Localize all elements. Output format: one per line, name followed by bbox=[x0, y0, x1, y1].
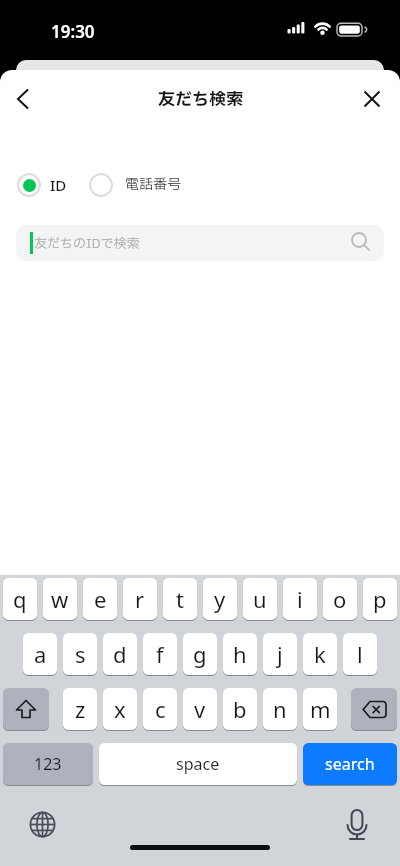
button[interactable]: e bbox=[83, 578, 117, 620]
staticText: 電話番号 bbox=[125, 174, 181, 195]
staticText: space bbox=[176, 753, 220, 775]
staticText: l bbox=[357, 639, 363, 669]
button[interactable]: z bbox=[63, 688, 97, 730]
button[interactable]: l bbox=[343, 633, 377, 675]
button[interactable]: h bbox=[223, 633, 257, 675]
staticText: r bbox=[135, 584, 145, 614]
button[interactable]: d bbox=[103, 633, 137, 675]
staticText: b bbox=[233, 694, 247, 724]
staticText: y bbox=[214, 584, 226, 614]
staticText: z bbox=[75, 694, 86, 724]
button[interactable] bbox=[351, 688, 397, 730]
staticText: e bbox=[94, 584, 107, 614]
button[interactable] bbox=[27, 809, 58, 840]
staticText: search bbox=[325, 753, 375, 775]
staticText: w bbox=[51, 584, 69, 614]
button[interactable] bbox=[0, 70, 48, 128]
staticText: x bbox=[114, 694, 126, 724]
staticText: 123 bbox=[34, 753, 62, 775]
staticText: q bbox=[13, 584, 27, 614]
staticText: k bbox=[314, 639, 326, 669]
staticText: j bbox=[277, 639, 283, 669]
button[interactable]: w bbox=[43, 578, 77, 620]
button[interactable]: o bbox=[323, 578, 357, 620]
staticText: d bbox=[113, 639, 127, 669]
button[interactable]: space bbox=[99, 743, 297, 785]
staticText: p bbox=[373, 584, 387, 614]
staticText: c bbox=[155, 694, 166, 724]
button[interactable]: q bbox=[3, 578, 37, 620]
button[interactable]: f bbox=[143, 633, 177, 675]
staticText: i bbox=[297, 584, 303, 614]
button[interactable] bbox=[341, 806, 372, 842]
button[interactable]: b bbox=[223, 688, 257, 730]
button[interactable]: g bbox=[183, 633, 217, 675]
staticText: 19:30 bbox=[51, 20, 95, 43]
button[interactable]: v bbox=[183, 688, 217, 730]
button[interactable]: 電話番号 bbox=[89, 172, 181, 197]
staticText: t bbox=[176, 584, 184, 614]
button[interactable] bbox=[3, 688, 49, 730]
button[interactable]: search bbox=[303, 743, 397, 785]
button[interactable]: u bbox=[243, 578, 277, 620]
button[interactable] bbox=[348, 70, 396, 128]
staticText: 友だちのIDで検索 bbox=[34, 234, 140, 253]
staticText: 友だち検索 bbox=[158, 87, 243, 112]
button[interactable]: i bbox=[283, 578, 317, 620]
button[interactable]: y bbox=[203, 578, 237, 620]
button[interactable]: j bbox=[263, 633, 297, 675]
staticText: u bbox=[253, 584, 267, 614]
staticText: s bbox=[75, 639, 86, 669]
staticText: o bbox=[333, 584, 347, 614]
button[interactable]: t bbox=[163, 578, 197, 620]
button[interactable]: a bbox=[23, 633, 57, 675]
button[interactable]: p bbox=[363, 578, 397, 620]
staticText: n bbox=[273, 694, 287, 724]
button[interactable]: m bbox=[303, 688, 337, 730]
button[interactable]: 123 bbox=[3, 743, 93, 785]
staticText: f bbox=[156, 639, 164, 669]
staticText: a bbox=[34, 639, 47, 669]
button[interactable]: ID bbox=[17, 172, 67, 197]
staticText: m bbox=[310, 694, 331, 724]
button[interactable]: k bbox=[303, 633, 337, 675]
button[interactable]: n bbox=[263, 688, 297, 730]
button[interactable]: r bbox=[123, 578, 157, 620]
staticText: ID bbox=[50, 175, 67, 195]
button[interactable]: c bbox=[143, 688, 177, 730]
button[interactable]: s bbox=[63, 633, 97, 675]
staticText: g bbox=[193, 639, 207, 669]
button[interactable]: 友だちのIDで検索 bbox=[16, 225, 384, 261]
button[interactable]: x bbox=[103, 688, 137, 730]
staticText: v bbox=[194, 694, 206, 724]
staticText: h bbox=[233, 639, 247, 669]
